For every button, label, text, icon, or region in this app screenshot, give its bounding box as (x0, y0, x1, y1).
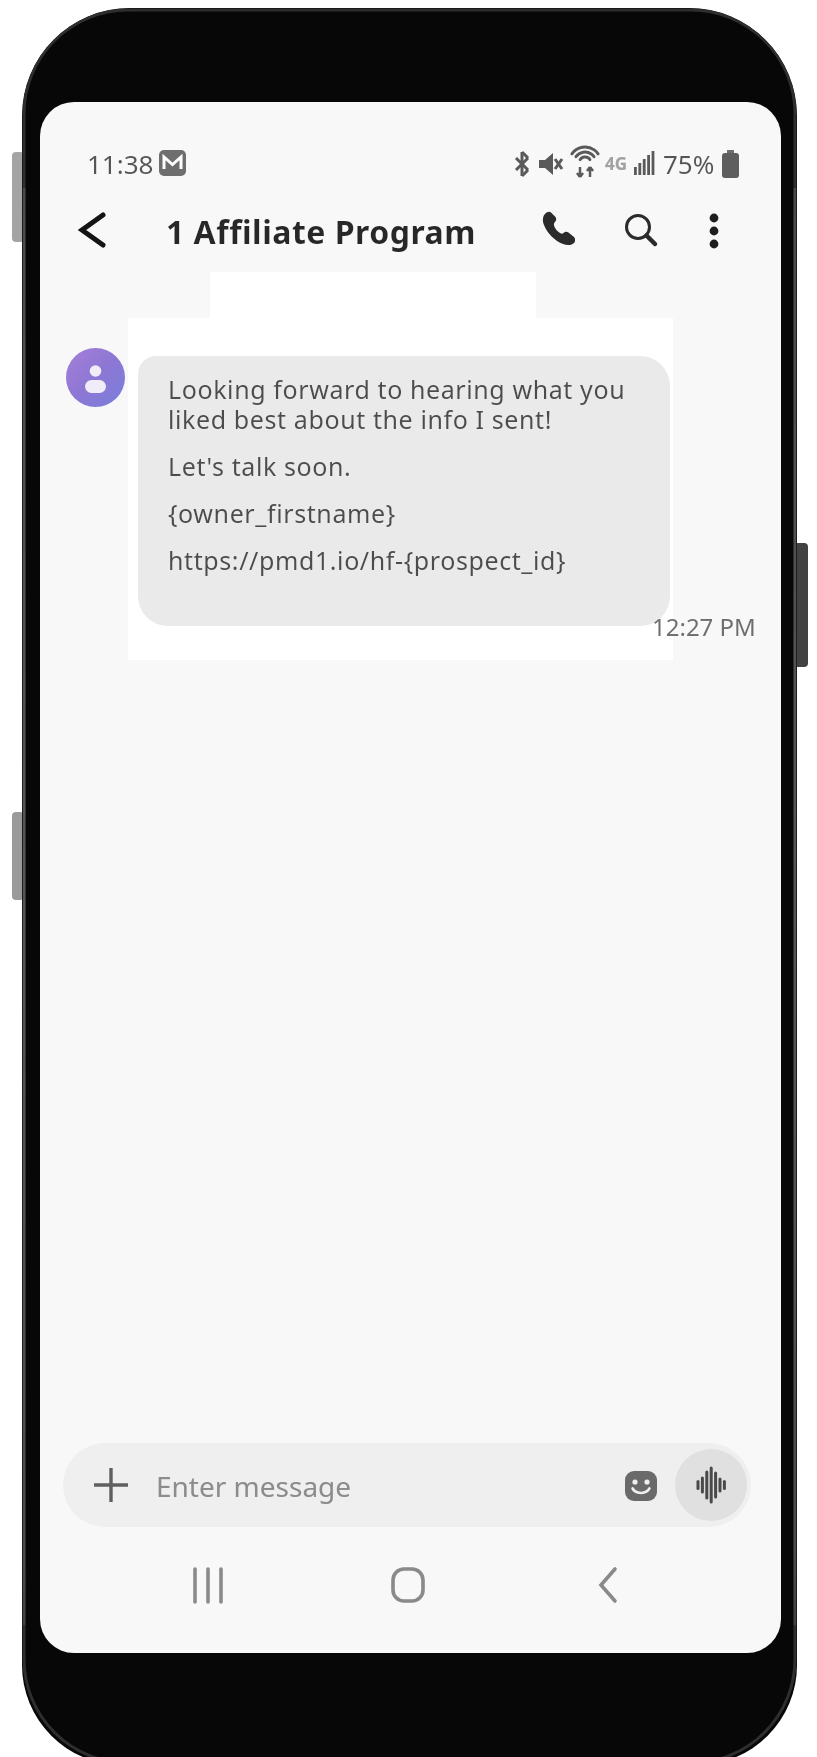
button[interactable] (614, 204, 666, 256)
button[interactable] (675, 1449, 747, 1521)
button[interactable] (68, 202, 124, 258)
button[interactable] (376, 1552, 440, 1616)
button[interactable]: Enter message (63, 1443, 751, 1527)
staticText: Let's talk soon. (168, 449, 352, 483)
staticText: {owner_firstname} (168, 496, 396, 530)
staticText: 75% (663, 146, 715, 181)
staticText: 12:27 PM (652, 610, 756, 643)
button[interactable] (688, 204, 740, 256)
button[interactable]: Looking forward to hearing what you like… (138, 356, 670, 626)
button[interactable] (576, 1552, 640, 1616)
button[interactable] (532, 204, 584, 256)
button[interactable] (176, 1552, 240, 1616)
staticText: Enter message (156, 1467, 352, 1505)
staticText: 4G (605, 152, 628, 175)
staticText: 1 Affiliate Program (166, 210, 476, 254)
staticText: Looking forward to hearing what you like… (168, 372, 626, 436)
button[interactable] (621, 1465, 663, 1507)
staticText: 11:38 (87, 146, 154, 181)
staticText: https://pmd1.io/hf-{prospect_id} (168, 543, 567, 577)
button[interactable] (91, 1465, 131, 1505)
